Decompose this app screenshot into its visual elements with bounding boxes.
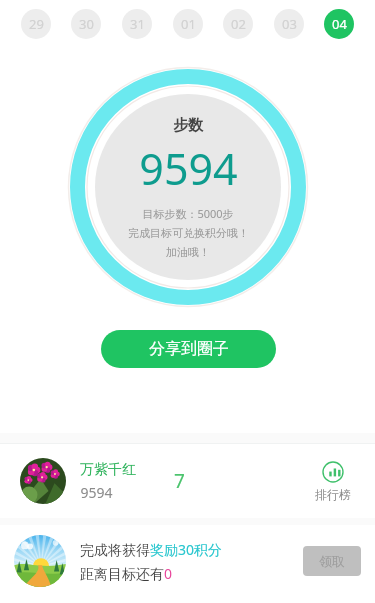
staticText: 完成目标可兑换积分哦！	[128, 226, 249, 240]
button[interactable]: 31	[122, 9, 152, 39]
staticText: 加油哦！	[166, 245, 210, 259]
staticText: 分享到圈子	[149, 339, 229, 359]
staticText: 步数	[173, 116, 203, 135]
button[interactable]: 01	[173, 9, 203, 39]
staticText: 29	[29, 15, 44, 33]
staticText: 距离目标还有0	[80, 564, 173, 583]
staticText: 7	[174, 468, 185, 494]
staticText: 9594	[80, 483, 113, 502]
staticText: 领取	[319, 553, 345, 569]
staticText: 30	[79, 15, 94, 33]
button[interactable]: 30	[71, 9, 101, 39]
staticText: 02	[231, 15, 246, 33]
staticText: 目标步数：5000步	[142, 206, 234, 221]
button[interactable]: 02	[223, 9, 253, 39]
button[interactable]: 领取	[303, 546, 361, 576]
button[interactable]: 万紫千红	[0, 444, 375, 518]
button[interactable]: 29	[21, 9, 51, 39]
button[interactable]: 03	[274, 9, 304, 39]
button[interactable]: 排行榜 Leaderboard	[311, 457, 355, 506]
staticText: 万紫千红	[80, 461, 136, 479]
staticText: 04	[332, 15, 347, 33]
button[interactable]: 分享到圈子	[101, 330, 276, 368]
staticText: 排行榜	[315, 487, 351, 502]
staticText: 31	[130, 15, 145, 33]
staticText: 03	[282, 15, 297, 33]
button[interactable]: 04	[324, 9, 354, 39]
staticText: 完成将获得奖励30积分	[80, 540, 223, 559]
staticText: 9594	[139, 139, 238, 198]
staticText: 01	[181, 15, 196, 33]
